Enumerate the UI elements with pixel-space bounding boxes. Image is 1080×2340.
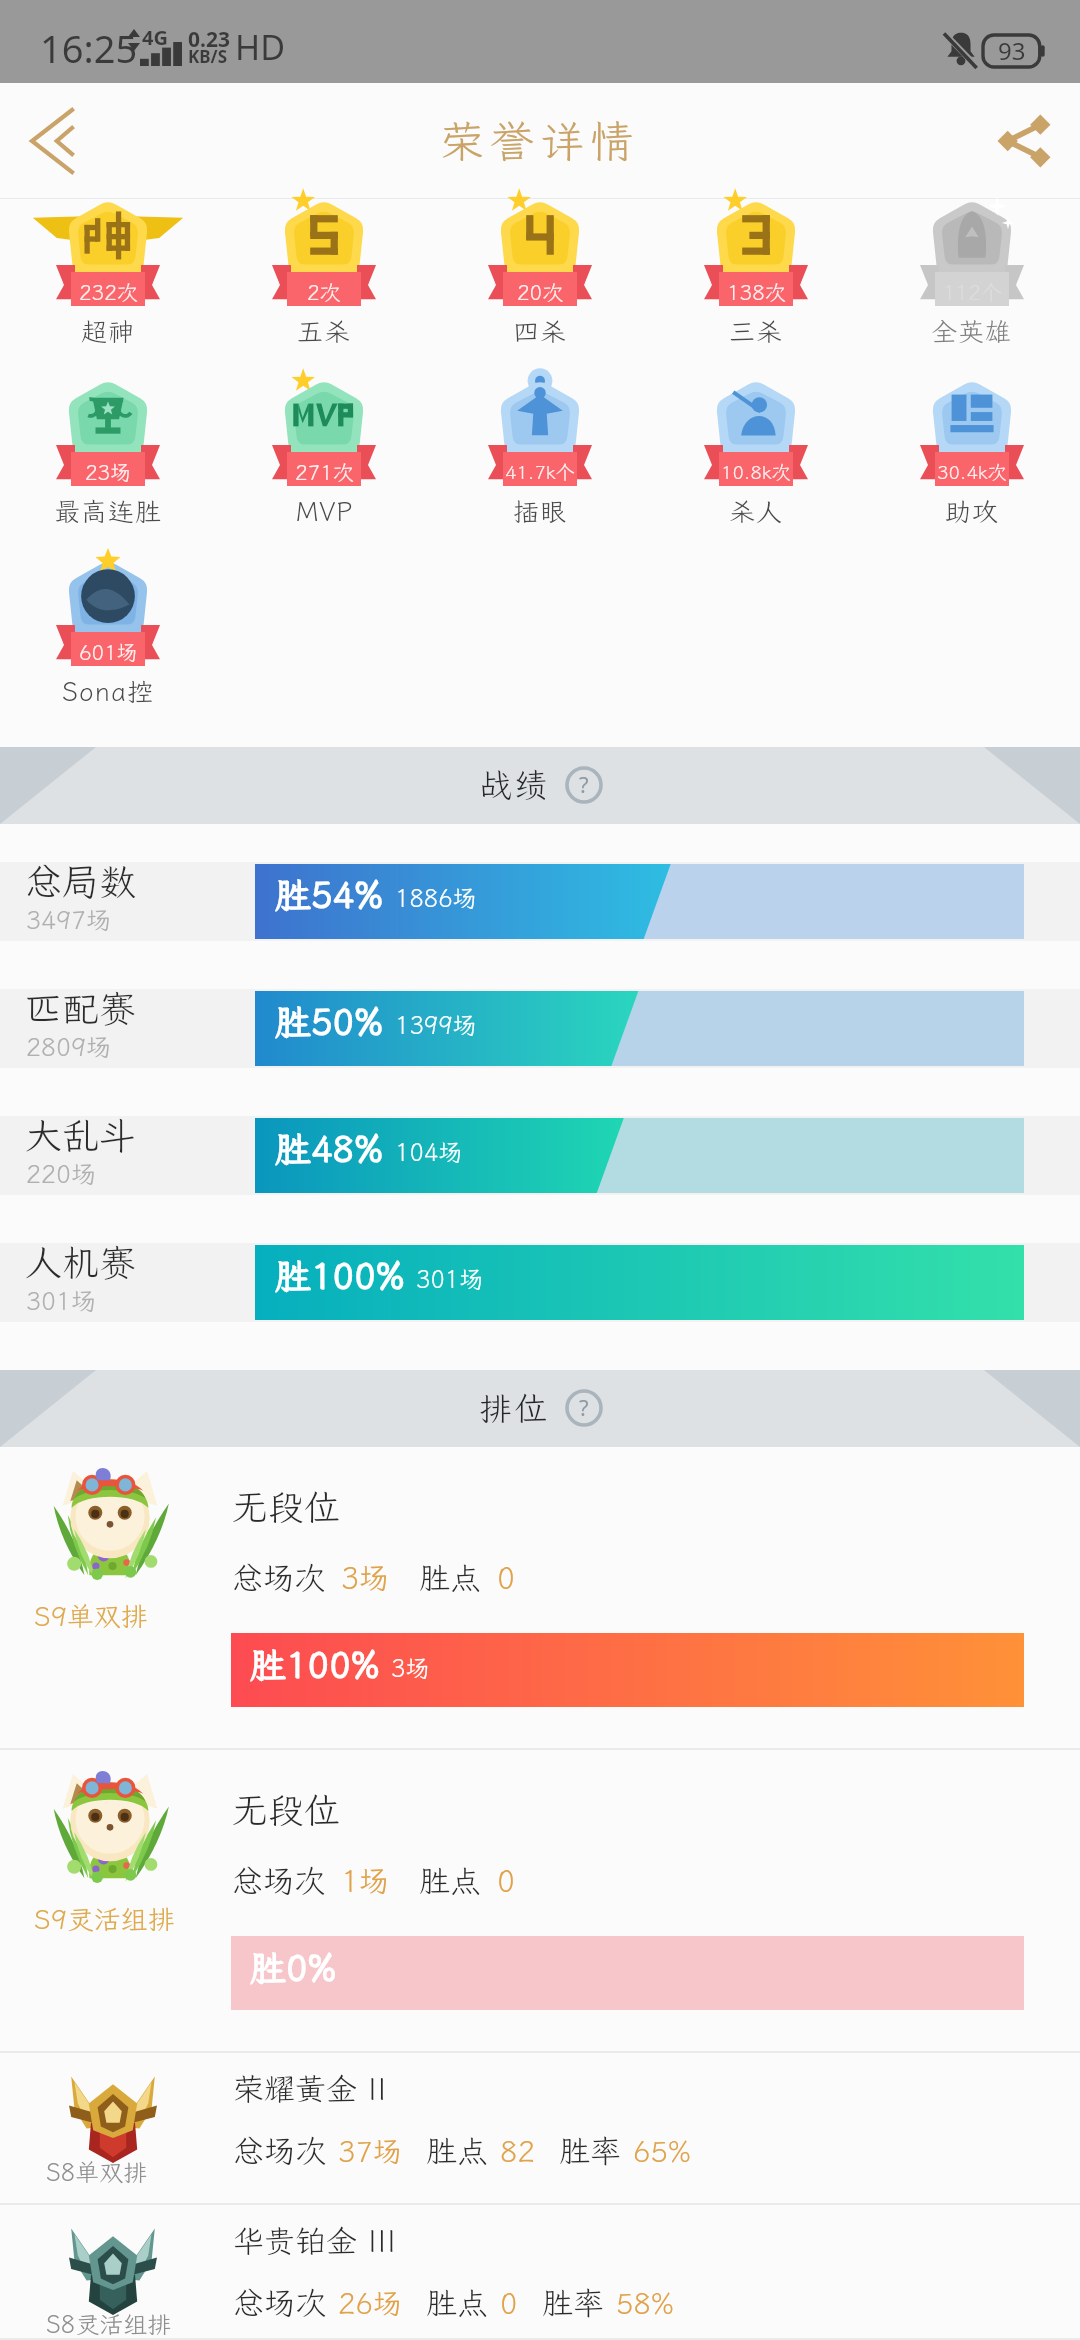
staticText: 胜点 <box>426 2282 488 2323</box>
button[interactable]: S9灵活组排 <box>0 1750 1080 2053</box>
staticText: 301场 <box>26 1284 97 1317</box>
staticText: 无段位 <box>232 1786 341 1833</box>
staticText: 超神 <box>81 314 136 348</box>
button[interactable]: 10.8k次 <box>648 379 864 559</box>
staticText: 五杀 <box>297 314 352 348</box>
staticText: 4G <box>142 24 168 51</box>
staticText: 301场 <box>416 1263 484 1295</box>
staticText: 271次 <box>295 458 354 486</box>
button[interactable]: S8灵活组排 <box>0 2205 1080 2340</box>
staticText: S8灵活组排 <box>46 2308 172 2340</box>
button[interactable]: 人机赛 <box>0 1205 1080 1332</box>
button[interactable]: 2次 <box>216 199 432 379</box>
button[interactable]: 232次 <box>0 199 216 379</box>
button[interactable]: 30.4k次 <box>864 379 1080 559</box>
button[interactable]: 大乱斗 <box>0 1078 1080 1205</box>
staticText: 胜100% <box>275 1252 405 1299</box>
staticText: 华贵铂金 III <box>233 2220 397 2261</box>
staticText: 总场次 <box>233 2282 326 2323</box>
staticText: S9单双排 <box>34 1598 148 1634</box>
staticText: KB/S <box>188 45 228 68</box>
staticText: 三杀 <box>729 314 784 348</box>
staticText: 0 <box>500 2284 518 2322</box>
staticText: 人机赛 <box>25 1238 136 1287</box>
staticText: 荣耀黄金 II <box>233 2068 387 2109</box>
staticText: 0 <box>497 1861 515 1901</box>
staticText: S8单双排 <box>46 2156 148 2188</box>
staticText: 58% <box>616 2284 675 2322</box>
staticText: 2次 <box>307 278 341 306</box>
staticText: 排位 <box>478 1386 548 1429</box>
staticText: 0.23 <box>188 25 230 54</box>
staticText: 胜率 <box>542 2282 604 2323</box>
staticText: 104场 <box>395 1136 463 1168</box>
staticText: 助攻 <box>945 494 1000 528</box>
staticText: 胜0% <box>250 1944 337 1991</box>
staticText: 3场 <box>341 1558 389 1598</box>
staticText: 41.7k个 <box>505 459 575 484</box>
staticText: 1场 <box>341 1861 389 1901</box>
staticText: 2809场 <box>26 1030 112 1063</box>
staticText: 16:25 <box>40 22 138 74</box>
staticText: 220场 <box>26 1157 97 1190</box>
staticText: 匹配赛 <box>25 984 136 1033</box>
button[interactable]: 41.7k个 <box>432 379 648 559</box>
staticText: 232次 <box>79 278 138 306</box>
button[interactable]: S8单双排 <box>0 2053 1080 2205</box>
staticText: 138次 <box>727 278 786 306</box>
staticText: 0 <box>497 1558 515 1598</box>
staticText: ? <box>579 1392 589 1422</box>
button[interactable]: S9单双排 <box>0 1447 1080 1750</box>
staticText: 总场次 <box>232 1860 325 1901</box>
staticText: 65% <box>633 2132 692 2170</box>
staticText: S9灵活组排 <box>34 1901 175 1937</box>
staticText: 93 <box>998 34 1026 67</box>
staticText: Sona控 <box>62 674 154 708</box>
button[interactable]: 匹配赛 <box>0 951 1080 1078</box>
button[interactable]: Help <box>565 1389 603 1427</box>
button[interactable]: 总局数 <box>0 824 1080 951</box>
staticText: 23场 <box>85 458 132 486</box>
staticText: 20次 <box>517 278 564 306</box>
button[interactable]: Share <box>976 93 1072 189</box>
button[interactable]: Help <box>565 766 603 804</box>
staticText: 荣誉详情 <box>440 112 640 170</box>
staticText: 82 <box>500 2132 535 2170</box>
staticText: 胜54% <box>275 871 384 918</box>
staticText: 全英雄 <box>931 314 1013 348</box>
staticText: 杀人 <box>729 494 784 528</box>
staticText: 总场次 <box>233 2130 326 2171</box>
staticText: 601场 <box>79 638 138 666</box>
button[interactable]: 271次 <box>216 379 432 559</box>
button[interactable]: 138次 <box>648 199 864 379</box>
staticText: 1399场 <box>395 1009 477 1041</box>
staticText: 26场 <box>338 2284 402 2322</box>
staticText: 30.4k次 <box>937 459 1007 484</box>
button[interactable]: 112个 <box>864 199 1080 379</box>
staticText: 插眼 <box>513 494 568 528</box>
staticText: 胜48% <box>275 1125 384 1172</box>
staticText: 1886场 <box>395 882 477 914</box>
button[interactable]: Back <box>6 91 98 191</box>
staticText: 胜点 <box>419 1860 481 1901</box>
staticText: MVP <box>296 494 353 528</box>
button[interactable]: 20次 <box>432 199 648 379</box>
staticText: 37场 <box>338 2132 402 2170</box>
staticText: 胜50% <box>275 998 384 1045</box>
staticText: 3497场 <box>26 903 112 936</box>
staticText: 总局数 <box>25 857 136 906</box>
button[interactable]: 601场 <box>0 559 216 739</box>
staticText: 战绩 <box>478 763 548 806</box>
staticText: 总场次 <box>232 1557 325 1598</box>
staticText: 四杀 <box>513 314 568 348</box>
staticText: 大乱斗 <box>25 1111 136 1160</box>
staticText: 3场 <box>391 1652 430 1684</box>
staticText: 胜100% <box>250 1641 380 1688</box>
staticText: 胜点 <box>426 2130 488 2171</box>
staticText: 最高连胜 <box>54 494 163 528</box>
button[interactable]: 23场 <box>0 379 216 559</box>
staticText: HD <box>235 24 286 70</box>
staticText: 10.8k次 <box>721 459 791 484</box>
staticText: 无段位 <box>232 1483 341 1530</box>
